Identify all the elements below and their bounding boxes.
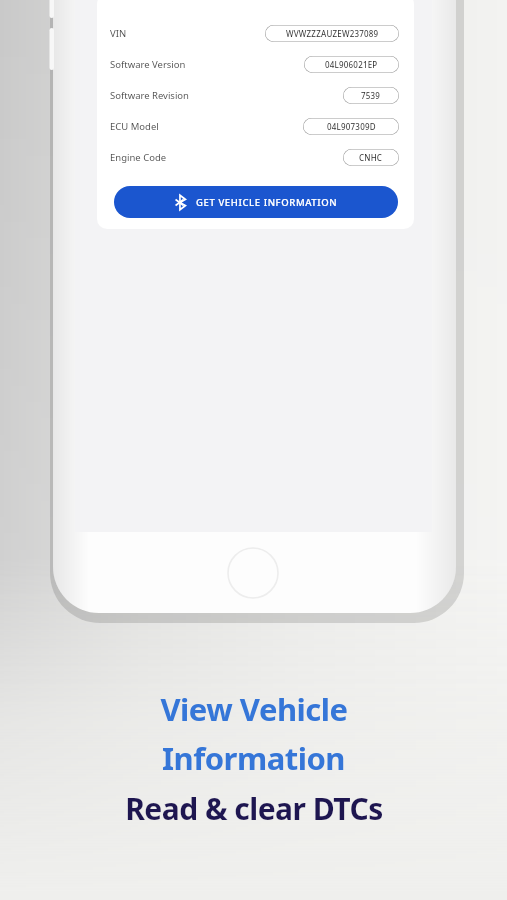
button[interactable]: ECU Model bbox=[97, 111, 414, 142]
staticText: VIN bbox=[110, 27, 127, 40]
staticText: ECU Model bbox=[110, 120, 159, 133]
staticText: CNHC bbox=[359, 152, 383, 163]
staticText: Read & clear DTCs bbox=[125, 788, 383, 829]
staticText: GET VEHICLE INFORMATION bbox=[196, 196, 338, 209]
staticText: 7539 bbox=[361, 90, 381, 101]
staticText: 04L907309D bbox=[327, 121, 376, 132]
staticText: Software Revision bbox=[110, 89, 189, 102]
staticText: Information bbox=[162, 737, 345, 779]
staticText: WVWZZZAUZEW237089 bbox=[286, 28, 379, 39]
staticText: 04L906021EP bbox=[325, 59, 378, 70]
button[interactable]: Engine Code bbox=[97, 142, 414, 173]
other: Bluetooth bbox=[175, 195, 186, 210]
button[interactable]: Bluetooth bbox=[114, 186, 398, 218]
staticText: Software Version bbox=[110, 58, 186, 71]
button[interactable]: VIN bbox=[97, 18, 414, 49]
button[interactable]: Software Version bbox=[97, 49, 414, 80]
staticText: View Vehicle bbox=[160, 688, 348, 730]
staticText: Engine Code bbox=[110, 151, 167, 164]
button[interactable]: Software Revision bbox=[97, 80, 414, 111]
